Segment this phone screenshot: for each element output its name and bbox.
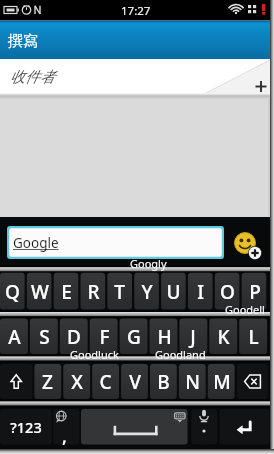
button[interactable]: X: [63, 364, 90, 399]
staticText: Z: [42, 369, 53, 395]
button[interactable]: N: [179, 364, 206, 399]
staticText: P: [249, 279, 261, 305]
button[interactable]: Space: [81, 409, 188, 445]
staticText: 17:27: [121, 3, 151, 19]
staticText: O: [220, 279, 235, 305]
button[interactable]: ?123: [0, 409, 52, 445]
button[interactable]: R: [81, 273, 106, 310]
staticText: Y: [141, 279, 153, 305]
staticText: 撰寫: [8, 32, 38, 51]
staticText: ,: [62, 424, 67, 449]
button[interactable]: C: [92, 364, 119, 399]
staticText: D: [67, 324, 81, 350]
button[interactable]: Google: [7, 226, 224, 259]
button[interactable]: T: [107, 273, 132, 310]
staticText: E: [61, 279, 72, 305]
button[interactable]: O: [215, 273, 240, 310]
staticText: G: [127, 324, 141, 350]
staticText: W: [31, 279, 49, 305]
staticText: R: [87, 279, 100, 305]
button[interactable]: Q: [0, 273, 25, 310]
staticText: Google: [13, 234, 59, 252]
button[interactable]: M: [208, 364, 235, 399]
staticText: Q: [5, 279, 20, 305]
button[interactable]: ,: [53, 409, 79, 445]
button[interactable]: Z: [34, 364, 61, 399]
button[interactable]: A: [0, 319, 28, 354]
staticText: I: [197, 279, 204, 305]
staticText: T: [114, 279, 125, 305]
staticText: N: [185, 369, 200, 395]
staticText: F: [99, 324, 110, 350]
staticText: X: [71, 369, 83, 395]
button[interactable]: D: [60, 319, 88, 354]
staticText: Goodland: [155, 347, 206, 362]
button[interactable]: G: [120, 319, 148, 354]
button[interactable]: 撰寫: [0, 21, 270, 60]
staticText: H: [157, 324, 172, 350]
button[interactable]: Y: [134, 273, 159, 310]
staticText: ?123: [10, 417, 42, 437]
staticText: J: [190, 324, 196, 350]
button[interactable]: J: [179, 319, 207, 354]
button[interactable]: Add recipient: [246, 71, 274, 102]
staticText: B: [157, 369, 170, 395]
button[interactable]: 收件者: [0, 59, 240, 94]
staticText: 收件者: [10, 68, 55, 87]
button[interactable]: Backspace: [237, 364, 268, 399]
button[interactable]: L: [239, 319, 267, 354]
staticText: K: [217, 324, 230, 350]
button[interactable]: U: [161, 273, 186, 310]
staticText: Googly: [130, 256, 167, 271]
button[interactable]: P: [242, 273, 267, 310]
staticText: Goodluck: [70, 347, 119, 362]
button[interactable]: Emoji: [232, 230, 262, 260]
button[interactable]: Enter: [219, 409, 269, 445]
button[interactable]: S: [30, 319, 58, 354]
staticText: V: [129, 369, 141, 395]
staticText: U: [166, 279, 181, 305]
button[interactable]: H: [150, 319, 178, 354]
button[interactable]: Voice input: [191, 409, 217, 445]
staticText: C: [99, 369, 112, 395]
button[interactable]: I: [188, 273, 213, 310]
button[interactable]: V: [121, 364, 148, 399]
button[interactable]: E: [54, 273, 79, 310]
staticText: A: [8, 324, 21, 350]
button[interactable]: W: [27, 273, 52, 310]
button[interactable]: Shift: [0, 364, 33, 399]
staticText: M: [213, 369, 231, 395]
staticText: Goodell: [225, 302, 265, 317]
staticText: S: [39, 324, 50, 350]
button[interactable]: F: [90, 319, 118, 354]
button[interactable]: B: [150, 364, 177, 399]
staticText: L: [248, 324, 259, 350]
button[interactable]: K: [209, 319, 237, 354]
